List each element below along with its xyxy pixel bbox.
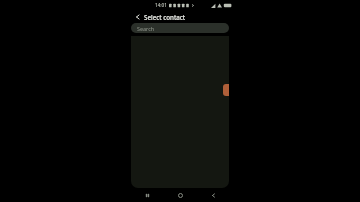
button[interactable]: Recent apps <box>141 189 154 202</box>
button[interactable]: Scroll index <box>223 84 229 96</box>
button[interactable]: Back <box>207 189 220 202</box>
staticText: Select contact <box>144 13 186 21</box>
staticText: Search <box>137 25 155 32</box>
staticText: 14:01 <box>155 2 167 8</box>
button[interactable]: Home <box>174 189 187 202</box>
button[interactable]: Navigate up <box>132 11 143 22</box>
button[interactable]: Search <box>131 23 229 33</box>
